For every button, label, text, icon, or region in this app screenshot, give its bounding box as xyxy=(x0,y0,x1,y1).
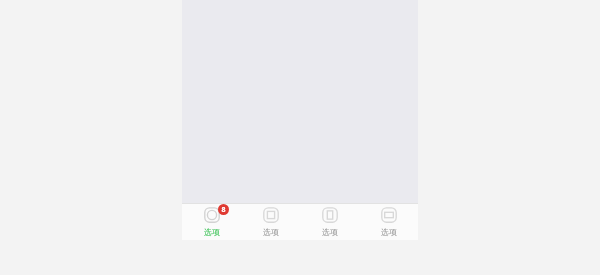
button[interactable]: 选项 xyxy=(300,203,359,240)
staticText: 选项 xyxy=(263,227,279,237)
button[interactable]: 选项 xyxy=(182,203,241,240)
staticText: 选项 xyxy=(322,227,338,237)
staticText: 8 xyxy=(221,205,226,215)
staticText: 选项 xyxy=(204,227,220,237)
staticText: 选项 xyxy=(381,227,397,237)
button[interactable]: 选项 xyxy=(241,203,300,240)
button[interactable]: 选项 xyxy=(359,203,418,240)
